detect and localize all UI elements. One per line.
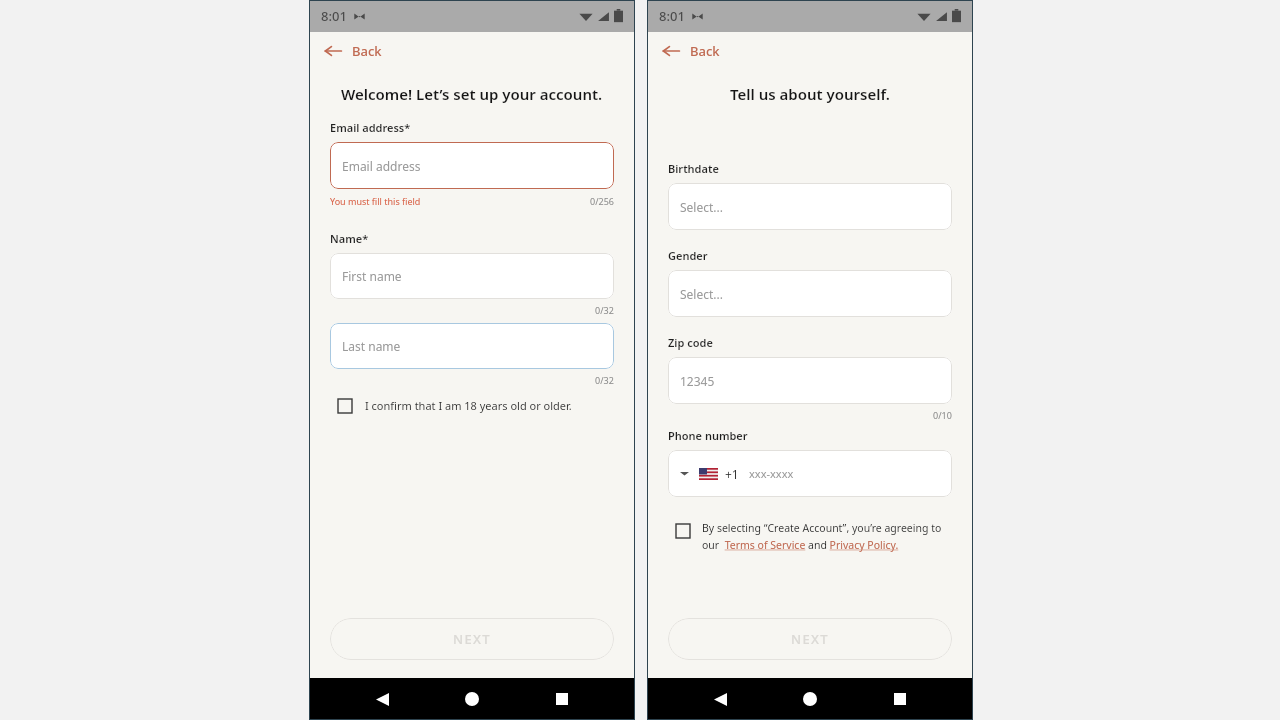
button[interactable]: Back [365,682,399,716]
staticText: By selecting “Create Account”, you’re ag… [702,521,952,552]
staticText: 0/32 [595,304,614,316]
staticText: Select... [680,199,723,215]
staticText: 12345 [680,373,715,389]
staticText: 0/256 [590,195,614,207]
button[interactable]: Email address [330,142,614,189]
button[interactable]: Home [455,682,489,716]
button[interactable]: Back [703,682,737,716]
button[interactable]: First name [330,253,614,299]
staticText: First name [342,268,402,284]
button[interactable]: Recents [545,682,579,716]
button[interactable]: Back [323,32,635,70]
staticText: 0/10 [933,409,952,421]
button[interactable]: +1 [668,450,952,497]
button[interactable]: NEXT [668,618,952,660]
button[interactable]: Home [793,682,827,716]
staticText: Tell us about yourself. [730,84,890,104]
button[interactable]: Select... [668,183,952,230]
staticText: You must fill this field [330,195,421,207]
staticText: Birthdate [668,161,719,176]
staticText: Gender [668,248,708,263]
staticText: +1 [725,466,739,482]
staticText: I confirm that I am 18 years old or olde… [365,398,572,413]
button[interactable]: Back [661,32,973,70]
staticText: Welcome! Let’s set up your account. [341,84,603,104]
button[interactable]: Last name [330,323,614,369]
staticText: 8:01 [659,7,685,25]
staticText: Email address* [330,120,411,135]
staticText: 8:01 [321,7,347,25]
button[interactable]: Recents [883,682,917,716]
button[interactable]: Select... [668,270,952,317]
staticText: NEXT [453,630,491,648]
button[interactable]: NEXT [330,618,614,660]
staticText: Back [690,42,720,60]
staticText: Select... [680,286,723,302]
staticText: Last name [342,338,401,354]
staticText: Phone number [668,428,748,443]
button[interactable]: 12345 [668,357,952,404]
staticText: xxx-xxxx [749,466,794,481]
staticText: Name* [330,231,369,246]
button[interactable]: I confirm that I am 18 years old or olde… [330,398,614,413]
staticText: NEXT [791,630,829,648]
staticText: Back [352,42,382,60]
staticText: 0/32 [595,374,614,386]
staticText: Email address [342,158,421,174]
button[interactable]: By selecting “Create Account”, you’re ag… [668,521,952,552]
staticText: Zip code [668,335,713,350]
